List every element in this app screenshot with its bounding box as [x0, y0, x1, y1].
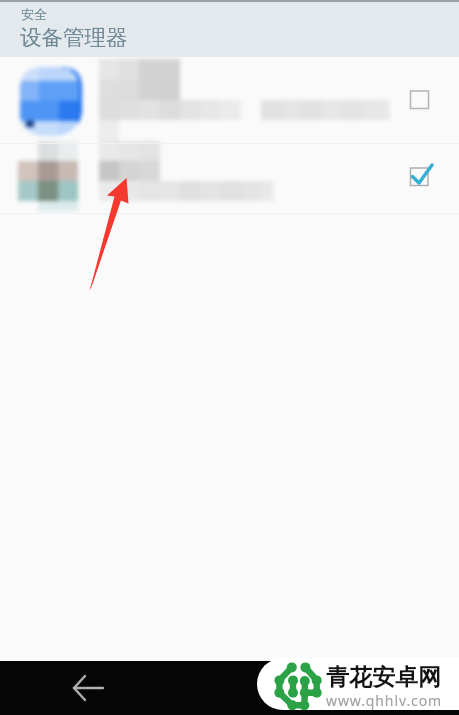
staticText: 安全: [21, 6, 47, 22]
staticText: www.qhhlv.com: [326, 691, 443, 710]
button[interactable]: [0, 57, 459, 143]
button[interactable]: [0, 144, 459, 213]
button[interactable]: 安全: [0, 0, 459, 57]
button[interactable]: Back: [66, 666, 110, 710]
staticText: 青花安卓网: [326, 663, 441, 692]
staticText: 设备管理器: [20, 24, 128, 51]
